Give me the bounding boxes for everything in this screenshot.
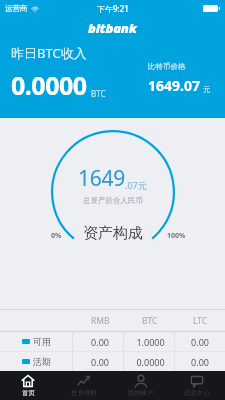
staticText: 运营商 xyxy=(5,4,28,13)
staticText: 我的账户 xyxy=(128,389,154,397)
staticText: 0.00 xyxy=(91,336,109,348)
staticText: 活期 xyxy=(33,356,51,367)
button[interactable]: 信息中心 xyxy=(169,374,225,397)
staticText: 昨日BTC收入 xyxy=(11,44,87,62)
staticText: 0.00 xyxy=(191,356,209,368)
button[interactable]: 活期 xyxy=(0,352,225,371)
staticText: 下午9:21 xyxy=(97,3,129,14)
staticText: 可用 xyxy=(33,336,51,347)
staticText: 1649.07 xyxy=(148,76,200,95)
staticText: 0.0000 xyxy=(11,68,87,102)
staticText: 1.0000 xyxy=(136,336,165,348)
button[interactable]: 可用 xyxy=(0,332,225,351)
staticText: 信息中心 xyxy=(184,389,210,397)
staticText: .07元 xyxy=(125,179,147,191)
staticText: 0.00 xyxy=(191,336,209,348)
staticText: 0.0000 xyxy=(136,356,165,368)
button[interactable]: 资产构成 xyxy=(83,224,143,243)
staticText: 元 xyxy=(203,85,211,94)
staticText: 投资理财 xyxy=(71,389,97,397)
staticText: LTC xyxy=(193,315,208,327)
staticText: 总资产折合人民币 xyxy=(83,196,143,205)
staticText: 1649 xyxy=(78,164,125,193)
staticText: BTC xyxy=(91,88,106,99)
staticText: bitbank xyxy=(88,19,137,37)
button[interactable]: 首页 xyxy=(0,374,56,397)
staticText: 比特币价格 xyxy=(148,62,186,71)
staticText: 0% xyxy=(51,231,62,241)
staticText: 首页 xyxy=(22,389,35,397)
button[interactable]: 投资理财 xyxy=(56,374,112,397)
staticText: 100% xyxy=(167,231,186,241)
staticText: BTC xyxy=(142,315,158,327)
staticText: RMB xyxy=(91,315,110,327)
staticText: 0.00 xyxy=(91,356,109,368)
button[interactable]: 我的账户 xyxy=(113,374,169,397)
